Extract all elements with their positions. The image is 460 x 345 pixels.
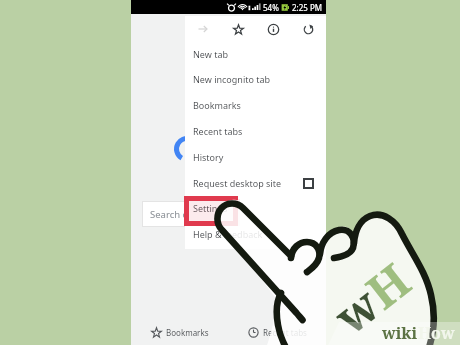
button[interactable]: Reload <box>291 24 326 35</box>
button[interactable]: Bookmarks <box>185 93 326 117</box>
staticText: New incognito tab <box>193 73 271 85</box>
button[interactable]: New tab <box>185 42 326 66</box>
staticText: 54% <box>263 2 279 13</box>
staticText: New tab <box>193 48 228 60</box>
staticText: Request desktop site <box>193 177 303 189</box>
staticText: Recent tabs <box>263 327 307 338</box>
button[interactable]: Forward <box>185 24 221 34</box>
button[interactable]: Recent tabs <box>185 119 326 143</box>
staticText: wiki <box>382 322 418 344</box>
button[interactable]: Request desktop site <box>185 171 326 195</box>
staticText: Search or type URL <box>150 208 222 221</box>
button[interactable]: Settings <box>185 196 326 220</box>
button[interactable]: Recent tabs <box>228 327 326 338</box>
button[interactable]: Search or type URL <box>142 201 222 227</box>
button[interactable]: History <box>185 145 326 169</box>
button[interactable]: Bookmarks <box>131 327 228 338</box>
staticText: H <box>353 248 423 323</box>
staticText: Recent tabs <box>193 125 243 137</box>
staticText: w <box>321 272 392 345</box>
button[interactable]: New incognito tab <box>185 67 326 91</box>
staticText: Bookmarks <box>166 327 209 338</box>
button[interactable]: Bookmark this page <box>221 24 256 35</box>
staticText: 2:25 PM <box>292 2 323 13</box>
staticText: Help & feedback <box>193 228 263 240</box>
button[interactable]: Page info <box>256 24 291 35</box>
staticText: History <box>193 151 224 163</box>
staticText: Bookmarks <box>193 99 241 111</box>
button[interactable]: Help & feedback <box>185 222 326 246</box>
staticText: How <box>418 322 455 344</box>
staticText: Settings <box>193 202 228 214</box>
